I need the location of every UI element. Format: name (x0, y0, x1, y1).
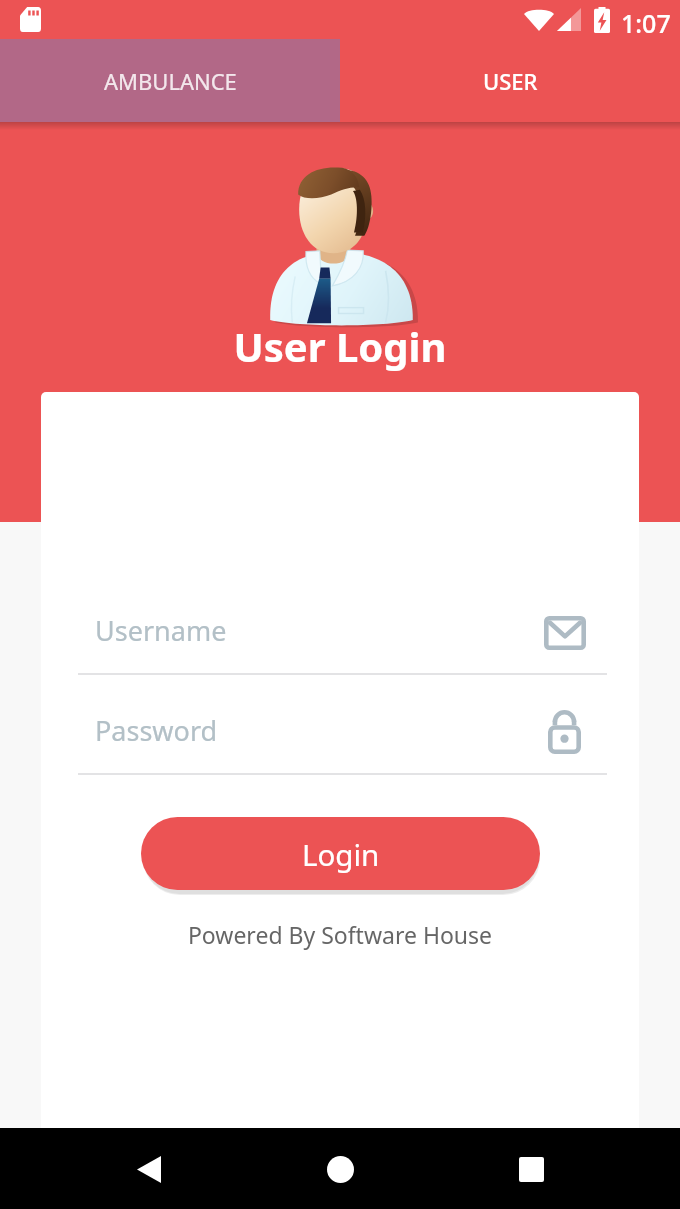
button[interactable]: USER (340, 39, 680, 122)
staticText: 1:07 (621, 6, 671, 40)
button[interactable]: Recents (491, 1129, 571, 1209)
button[interactable]: AMBULANCE (0, 39, 340, 122)
button[interactable]: Back (109, 1129, 189, 1209)
staticText: Powered By Software House (0, 919, 680, 950)
other: Password (548, 710, 581, 754)
staticText: Username (95, 612, 227, 649)
button[interactable]: Password (78, 714, 607, 775)
button[interactable]: Login (141, 817, 540, 890)
other: Email (544, 616, 586, 650)
staticText: USER (483, 66, 538, 96)
staticText: AMBULANCE (104, 66, 237, 96)
button[interactable]: Home (300, 1129, 380, 1209)
button[interactable]: Username (78, 614, 607, 675)
staticText: User Login (0, 319, 680, 373)
staticText: Login (302, 834, 380, 874)
staticText: Password (95, 712, 218, 749)
